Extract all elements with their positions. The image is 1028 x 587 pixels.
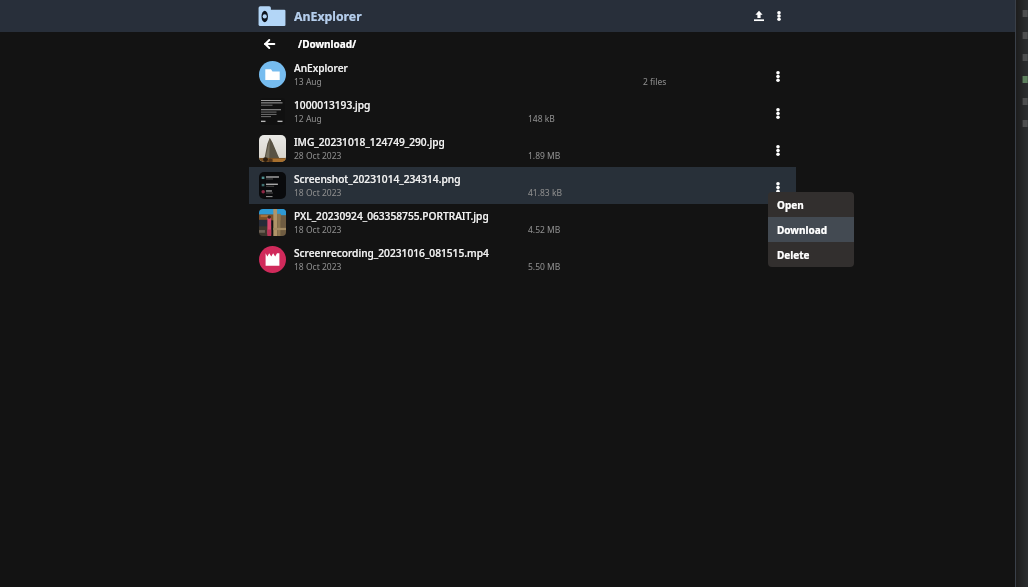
staticText: Screenshot_20231014_234314.png: [294, 172, 461, 186]
staticText: Delete: [777, 248, 810, 262]
button[interactable]: More options: [765, 58, 791, 95]
staticText: AnExplorer: [294, 61, 348, 75]
button[interactable]: PXL_20230924_063358755.PORTRAIT.jpg: [249, 204, 796, 241]
button[interactable]: More options: [765, 206, 791, 243]
staticText: IMG_20231018_124749_290.jpg: [294, 135, 445, 149]
staticText: Open: [777, 198, 804, 212]
button[interactable]: Open: [768, 192, 854, 217]
staticText: PXL_20230924_063358755.PORTRAIT.jpg: [294, 209, 489, 223]
button[interactable]: More options: [765, 132, 791, 169]
button[interactable]: Screenshot_20231014_234314.png: [249, 167, 796, 204]
staticText: 148 kB: [528, 113, 555, 125]
staticText: 18 Oct 2023: [294, 261, 342, 273]
staticText: Download: [777, 223, 827, 237]
staticText: 18 Oct 2023: [294, 187, 342, 199]
staticText: 18 Oct 2023: [294, 224, 342, 236]
button[interactable]: Delete: [768, 242, 854, 267]
staticText: Screenrecording_20231016_081515.mp4: [294, 246, 489, 260]
staticText: 12 Aug: [294, 113, 322, 125]
staticText: 2 files: [643, 76, 667, 88]
button[interactable]: AnExplorer: [249, 56, 796, 93]
button[interactable]: IMG_20231018_124749_290.jpg: [249, 130, 796, 167]
staticText: 28 Oct 2023: [294, 150, 342, 162]
staticText: AnExplorer: [294, 8, 362, 25]
button[interactable]: More options: [765, 95, 791, 132]
staticText: 4.52 MB: [528, 224, 561, 236]
button[interactable]: More options: [765, 169, 791, 206]
button[interactable]: More options: [765, 243, 791, 280]
button[interactable]: Screenrecording_20231016_081515.mp4: [249, 241, 796, 278]
staticText: 1.89 MB: [528, 150, 561, 162]
staticText: /Download/: [298, 37, 357, 51]
staticText: 41.83 kB: [528, 187, 563, 199]
staticText: 13 Aug: [294, 76, 322, 88]
staticText: 5.50 MB: [528, 261, 561, 273]
button[interactable]: Upload: [748, 1, 770, 31]
button[interactable]: Download: [768, 217, 854, 242]
button[interactable]: 1000013193.jpg: [249, 93, 796, 130]
staticText: 1000013193.jpg: [294, 98, 371, 112]
button[interactable]: More options: [770, 1, 787, 31]
button[interactable]: Back: [256, 32, 282, 56]
